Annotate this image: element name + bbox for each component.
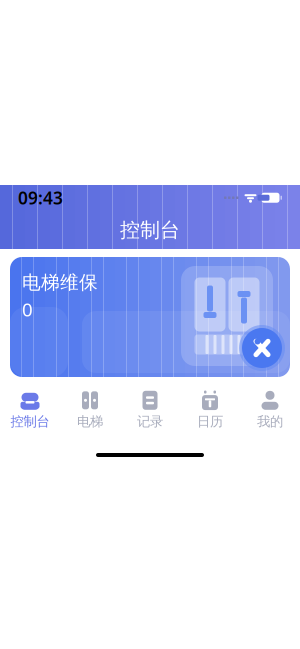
staticText: 我的 xyxy=(257,413,283,430)
staticText: 控制台 xyxy=(10,413,49,430)
staticText: 0 xyxy=(22,297,33,322)
button[interactable]: 电梯 xyxy=(60,384,120,434)
button[interactable]: 记录 xyxy=(120,384,180,434)
staticText: 记录 xyxy=(137,413,163,430)
staticText: 09:43 xyxy=(18,186,63,209)
button[interactable]: 我的 xyxy=(240,384,300,434)
staticText: 电梯 xyxy=(77,413,103,430)
staticText: 电梯维保 xyxy=(22,271,98,294)
button[interactable]: 控制台 xyxy=(0,384,60,434)
staticText: 控制台 xyxy=(120,218,180,242)
button[interactable]: 电梯维保 xyxy=(10,257,290,377)
staticText: 日历 xyxy=(197,413,223,430)
button[interactable]: 日历 xyxy=(180,384,240,434)
